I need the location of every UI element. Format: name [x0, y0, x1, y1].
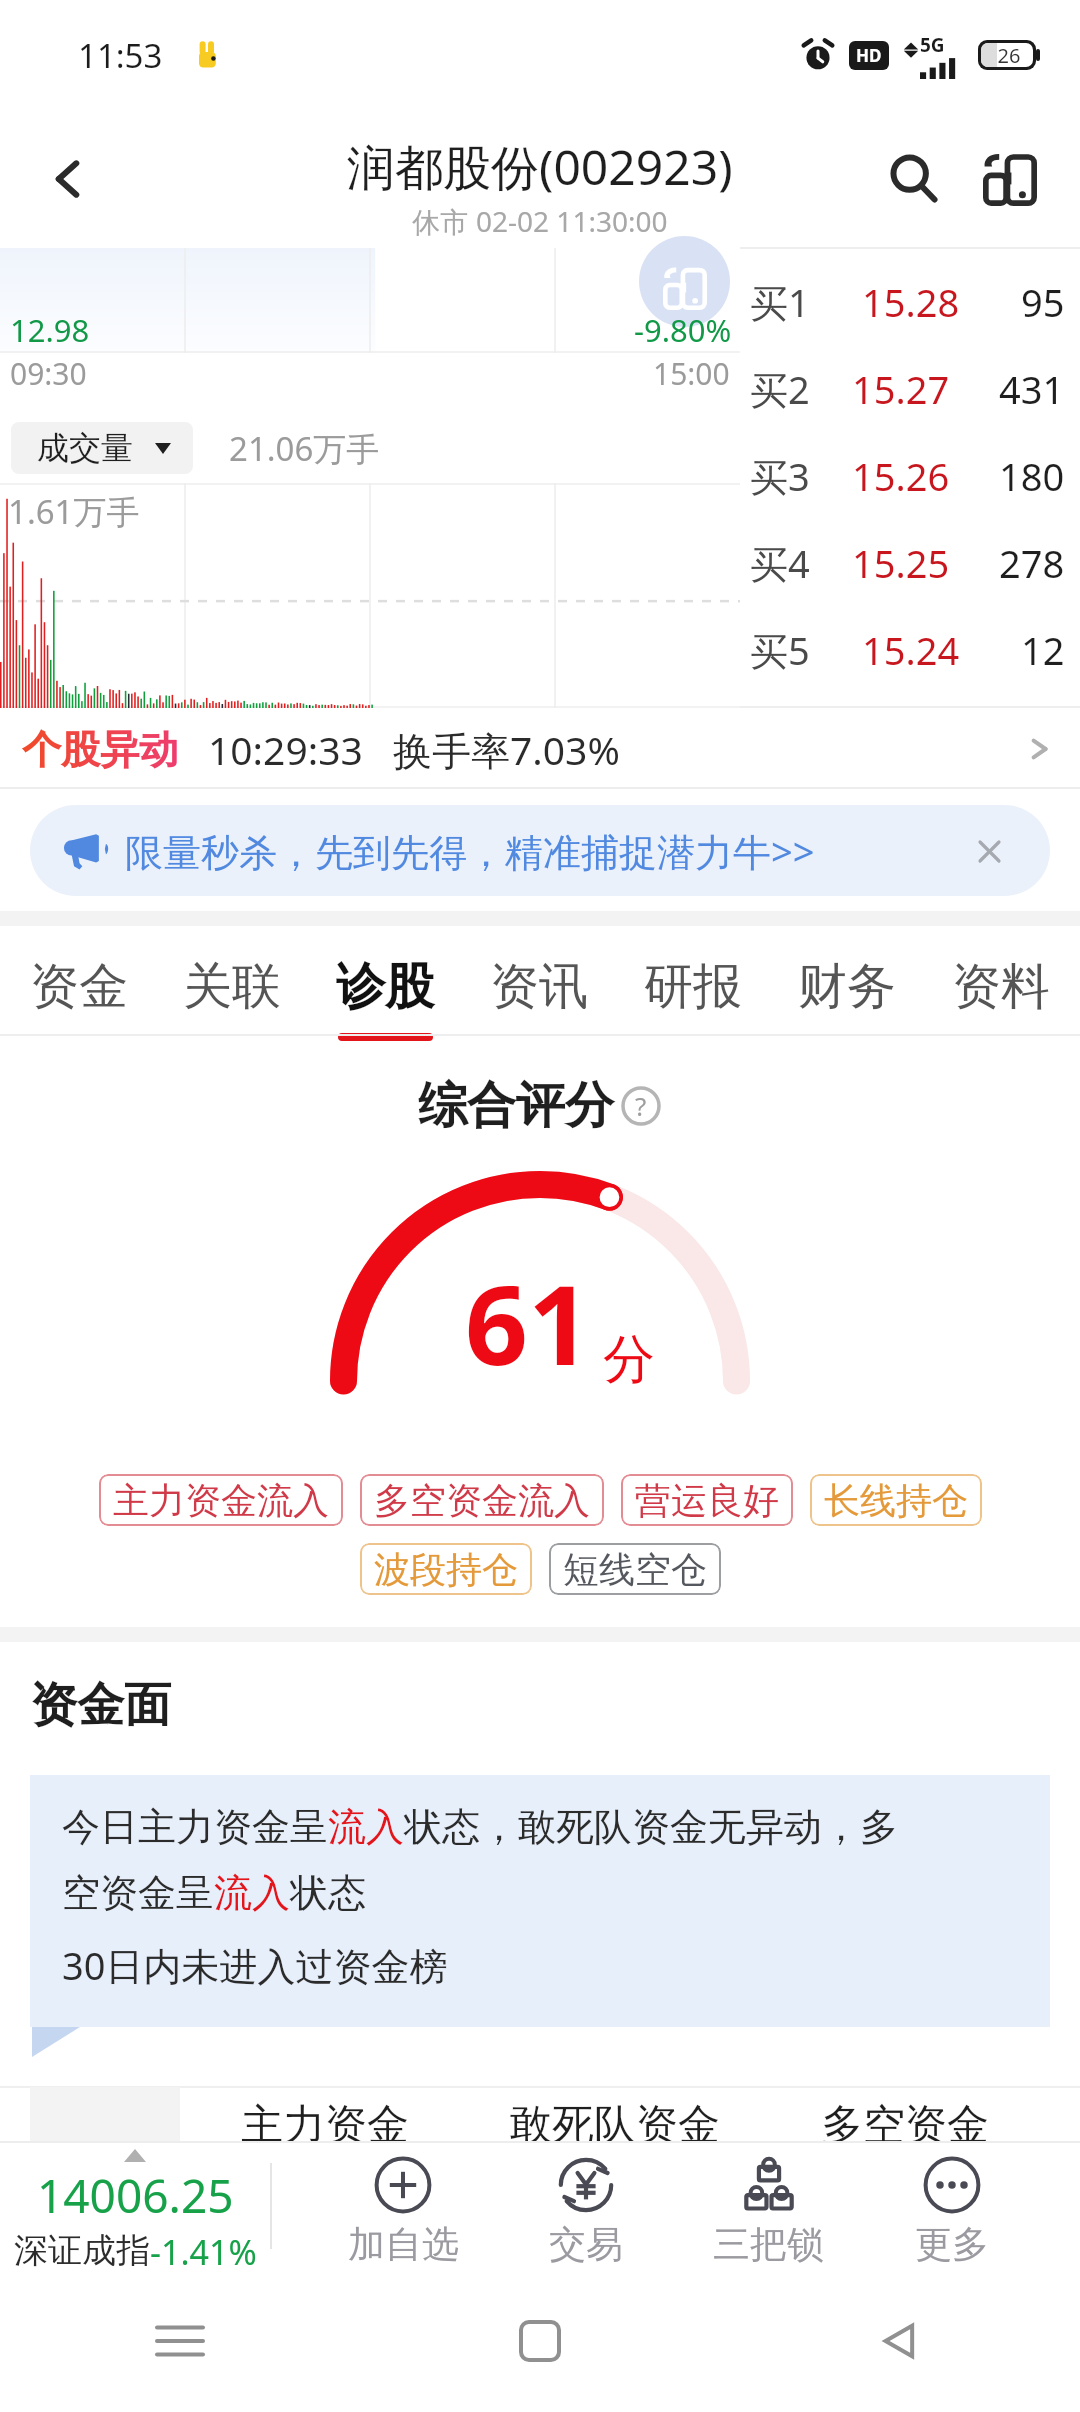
staticText: 资讯	[490, 956, 588, 1018]
staticText: 15.24	[862, 624, 960, 676]
button[interactable]: 关联	[155, 926, 308, 1037]
button[interactable]: 三把锁	[677, 2142, 860, 2270]
staticText: 状态，敢死队资金无异动，多	[404, 1803, 898, 1851]
button[interactable]: 买4	[740, 519, 1080, 606]
staticText: 主力资金流入	[113, 1478, 329, 1523]
button[interactable]: Help	[620, 1085, 662, 1127]
button[interactable]: Stock report	[639, 236, 730, 327]
staticText: 431	[999, 363, 1065, 415]
staticText: HD	[856, 44, 882, 67]
button[interactable]: 资讯	[462, 926, 616, 1037]
staticText: -9.80%	[634, 309, 732, 351]
button[interactable]: 研报	[616, 926, 770, 1037]
button[interactable]: Close banner	[964, 826, 1014, 876]
button[interactable]: 限量秒杀，先到先得，精准捕捉潜力牛>>	[30, 805, 1050, 896]
staticText: 资料	[952, 956, 1050, 1018]
button[interactable]: Stock report	[962, 131, 1058, 227]
staticText: 12	[1021, 624, 1065, 676]
staticText: 研报	[644, 956, 742, 1018]
staticText: 流入	[328, 1803, 404, 1851]
staticText: 换手率7.03%	[393, 723, 620, 776]
button[interactable]: 长线持仓	[810, 1474, 982, 1526]
button[interactable]: 资料	[924, 926, 1078, 1037]
staticText: 买2	[750, 363, 810, 415]
button[interactable]: 波段持仓	[360, 1543, 532, 1595]
staticText: 买3	[750, 450, 810, 502]
button[interactable]: 买5	[740, 606, 1080, 693]
button[interactable]: 个股异动	[0, 708, 1080, 790]
staticText: 今日主力资金呈	[62, 1803, 328, 1851]
button[interactable]: 营运良好	[621, 1474, 793, 1526]
staticText: 26	[980, 42, 1038, 69]
staticText: 财务	[798, 956, 896, 1018]
button[interactable]: 买3	[740, 432, 1080, 519]
button[interactable]: Back	[20, 131, 116, 227]
staticText: 主力资金	[180, 2099, 470, 2152]
staticText: 多空资金	[760, 2099, 1050, 2152]
staticText: 波段持仓	[374, 1547, 518, 1592]
staticText: 61	[465, 1247, 591, 1397]
staticText: ?	[635, 1088, 647, 1123]
staticText: 交易	[549, 2221, 623, 2268]
staticText: 流入	[214, 1869, 290, 1917]
button[interactable]: Back	[720, 2270, 1080, 2412]
staticText: 状态	[290, 1869, 366, 1917]
button[interactable]: 更多	[860, 2142, 1043, 2270]
button[interactable]: Search	[866, 131, 962, 227]
button[interactable]: 主力资金流入	[99, 1474, 343, 1526]
staticText: 休市	[412, 202, 476, 240]
staticText: 润都股份(002923)	[347, 134, 733, 200]
button[interactable]: 成交量	[11, 422, 193, 474]
staticText: 短线空仓	[563, 1547, 707, 1592]
staticText: 278	[999, 537, 1065, 589]
staticText: 买4	[750, 537, 810, 589]
staticText: 15.28	[862, 276, 960, 328]
button[interactable]: 财务	[770, 926, 924, 1037]
staticText: 15.27	[852, 363, 950, 415]
button[interactable]: Recent apps	[0, 2270, 360, 2412]
staticText: 30日内未进入过资金榜	[62, 1939, 448, 1991]
staticText: 09:30	[10, 353, 87, 394]
button[interactable]: 资金	[2, 926, 155, 1037]
staticText: 加自选	[348, 2221, 459, 2268]
staticText: 分	[603, 1327, 655, 1393]
staticText: 95	[1021, 276, 1065, 328]
staticText: 10:29:33	[208, 723, 363, 776]
staticText: 21.06万手	[229, 426, 380, 471]
button[interactable]: 买1	[740, 258, 1080, 345]
button[interactable]: Home	[360, 2270, 720, 2412]
button[interactable]: 交易	[494, 2142, 677, 2270]
button[interactable]: 买2	[740, 345, 1080, 432]
button[interactable]: 短线空仓	[549, 1543, 721, 1595]
staticText: 综合评分	[418, 1075, 614, 1137]
staticText: 买5	[750, 624, 810, 676]
staticText: 15.25	[852, 537, 950, 589]
staticText: 关联	[183, 956, 281, 1018]
staticText: 空资金呈	[62, 1869, 214, 1917]
staticText: 营运良好	[635, 1478, 779, 1523]
staticText: 成交量	[37, 428, 133, 468]
staticText: 02-02 11:30:00	[476, 202, 668, 240]
staticText: 15.26	[852, 450, 950, 502]
staticText: 14006.25	[37, 2164, 234, 2227]
button[interactable]: 诊股	[308, 926, 462, 1037]
staticText: 资金面	[30, 1676, 171, 1735]
staticText: 1.61万手	[8, 489, 140, 534]
button[interactable]: 14006.25	[0, 2142, 270, 2270]
staticText: 180	[999, 450, 1065, 502]
staticText: 5G	[920, 32, 945, 58]
staticText: 买1	[750, 276, 810, 328]
staticText: 个股异动	[22, 725, 178, 774]
staticText: 敢死队资金	[470, 2099, 760, 2152]
staticText: 限量秒杀，先到先得，精准捕捉潜力牛>>	[125, 825, 815, 877]
staticText: 深证成指	[14, 2229, 150, 2270]
button[interactable]: 多空资金流入	[360, 1474, 604, 1526]
staticText: 诊股	[336, 956, 434, 1018]
staticText: 长线持仓	[824, 1478, 968, 1523]
staticText: 12.98	[10, 309, 90, 351]
button[interactable]: 加自选	[312, 2142, 494, 2270]
staticText: 多空资金流入	[374, 1478, 590, 1523]
staticText: 资金	[30, 956, 128, 1018]
staticText: 11:53	[78, 33, 163, 78]
staticText: 15:00	[653, 353, 730, 394]
